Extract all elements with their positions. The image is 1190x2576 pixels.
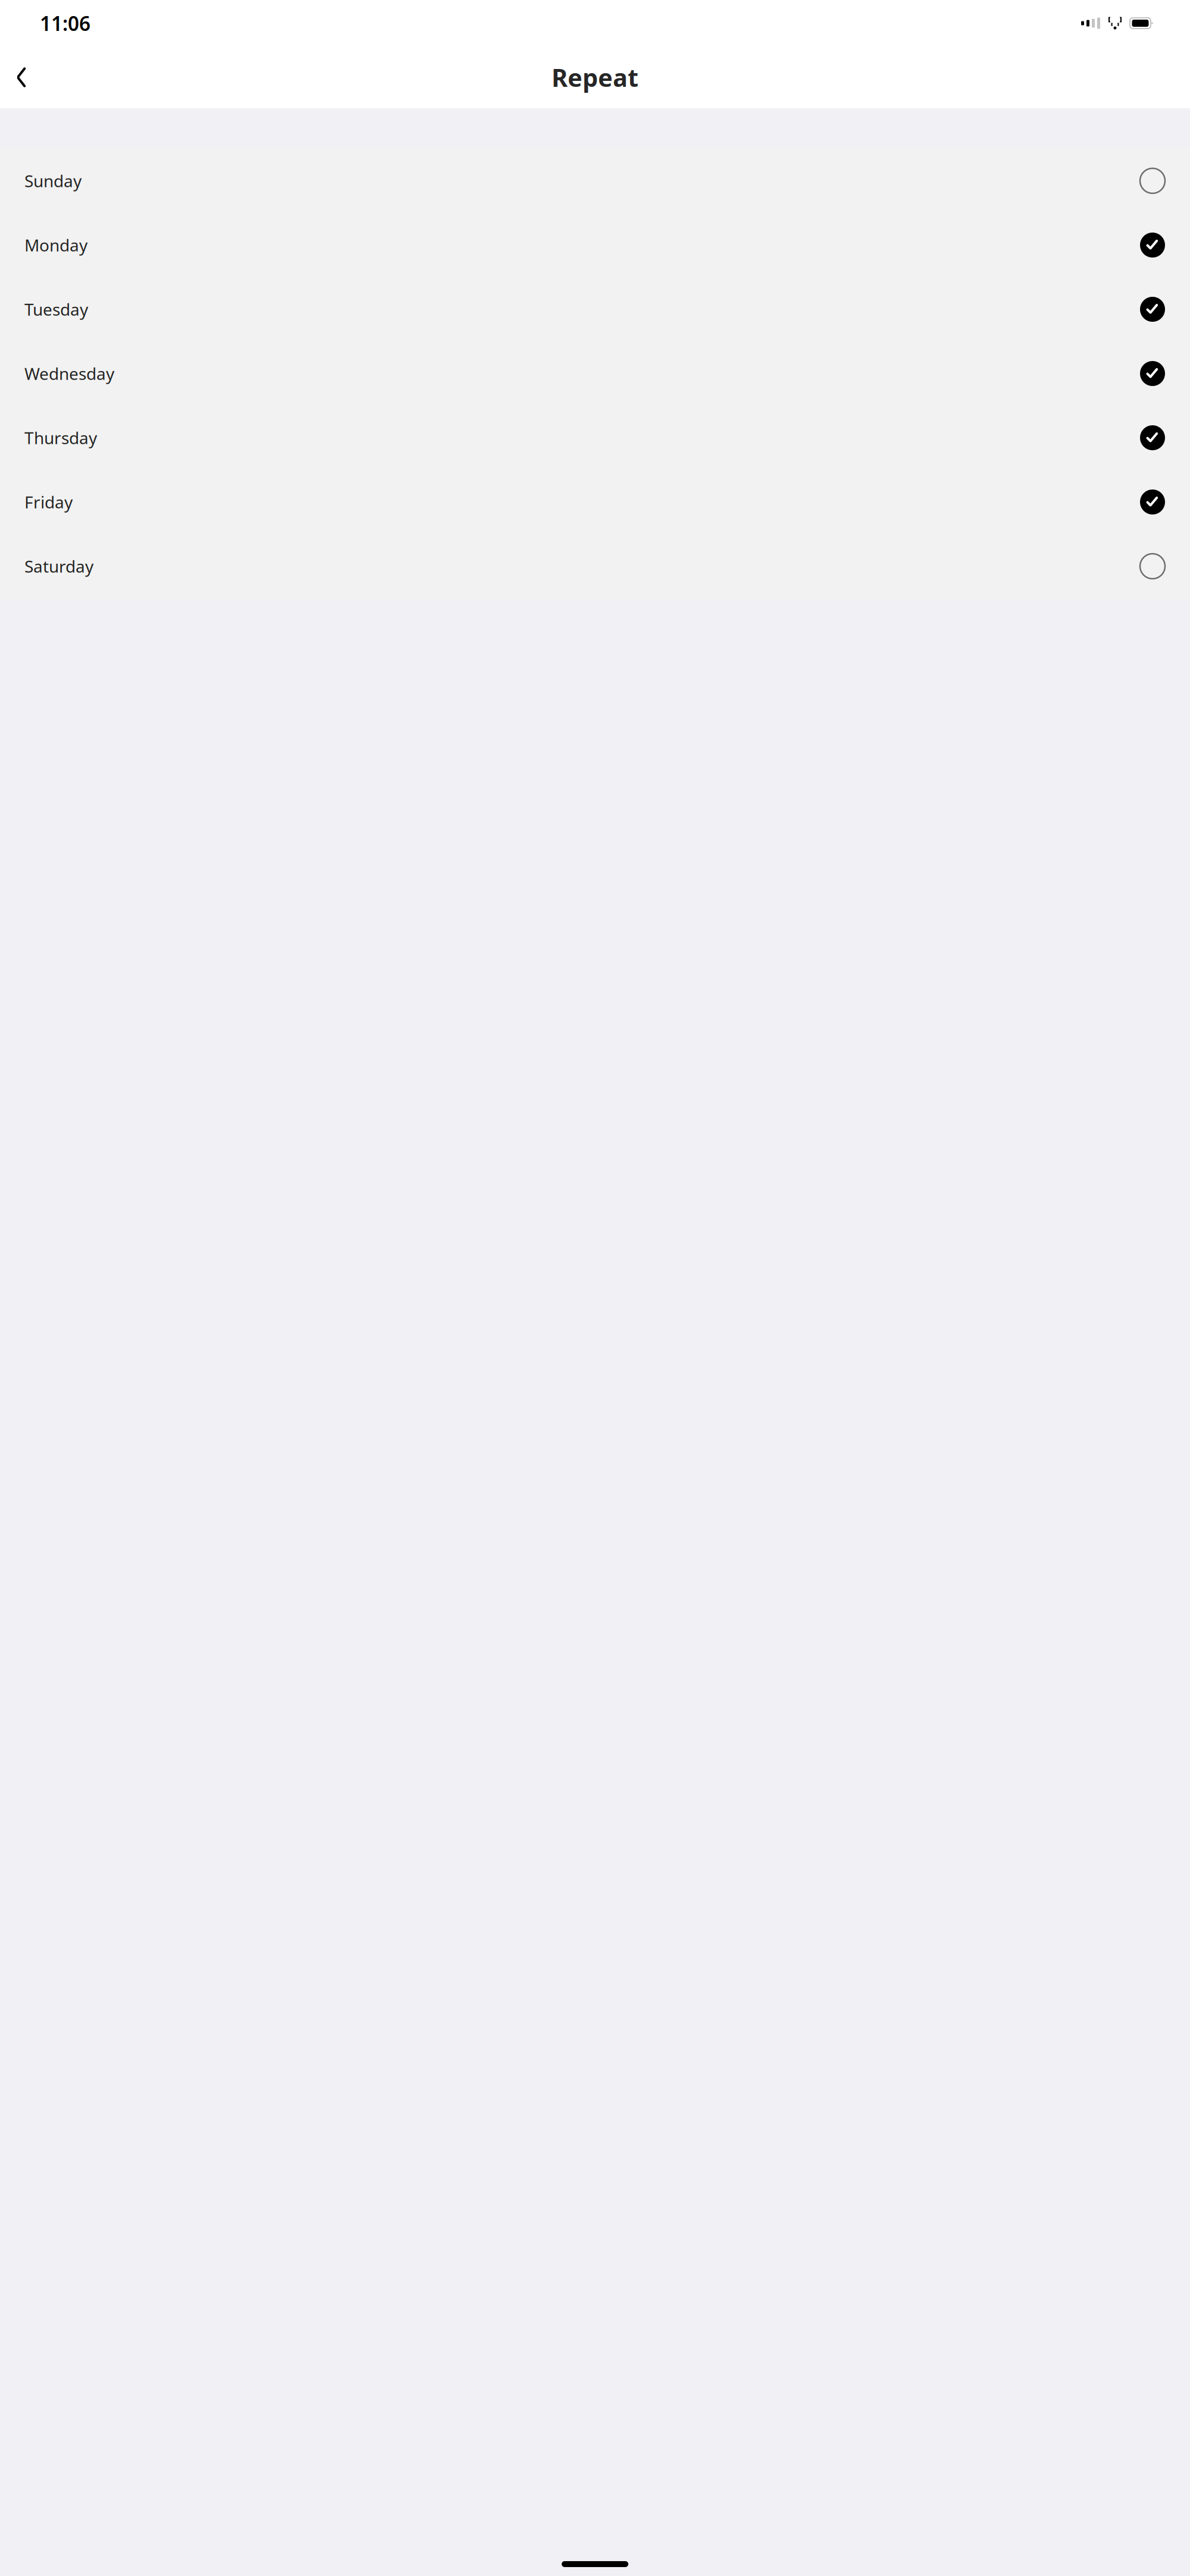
staticText: Friday bbox=[24, 491, 73, 513]
button[interactable]: Saturday bbox=[0, 534, 1190, 598]
staticText: 11:06 bbox=[40, 10, 90, 36]
button[interactable]: Friday bbox=[0, 470, 1190, 534]
button[interactable]: Sunday bbox=[0, 149, 1190, 213]
staticText: Monday bbox=[24, 234, 87, 256]
button[interactable]: Wednesday bbox=[0, 341, 1190, 406]
button[interactable]: Back bbox=[6, 61, 37, 94]
button[interactable]: Tuesday bbox=[0, 277, 1190, 341]
staticText: Thursday bbox=[24, 427, 97, 449]
button[interactable]: Thursday bbox=[0, 406, 1190, 470]
staticText: Repeat bbox=[552, 61, 638, 94]
button[interactable]: Monday bbox=[0, 213, 1190, 277]
staticText: Tuesday bbox=[24, 298, 88, 320]
staticText: Sunday bbox=[24, 170, 82, 192]
staticText: Wednesday bbox=[24, 362, 114, 385]
staticText: Saturday bbox=[24, 555, 93, 577]
